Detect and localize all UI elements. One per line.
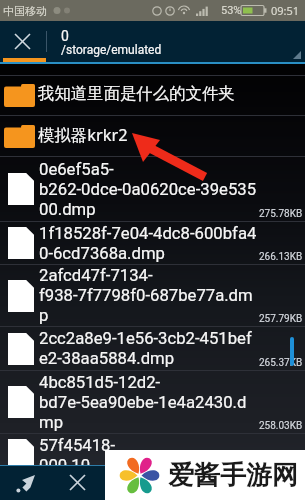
button[interactable]: 2cc2a8e9-1e56-3cb2-451bef e2-38aa5884.dm… <box>0 327 305 370</box>
button[interactable]: Cancel <box>52 465 102 500</box>
button[interactable]: Select <box>0 465 52 500</box>
staticText: 4bc851d5-12d2- bd7e-5ea90ebe-1e4a2430.d … <box>39 373 247 433</box>
staticText: 爱酱手游网 <box>168 459 298 492</box>
staticText: 中国移动 <box>3 4 47 18</box>
button[interactable]: 2afcd47f-7134- f938-7f7798f0-687be77a.dm… <box>0 265 305 326</box>
button[interactable]: 57f45418- 000 10 <box>0 434 305 476</box>
staticText: 275.78KB <box>259 208 303 220</box>
staticText: 258.03KB <box>259 463 303 475</box>
staticText: 257.79KB <box>259 313 303 325</box>
button[interactable]: Close <box>0 21 45 62</box>
button[interactable]: 模拟器krkr2 <box>0 116 305 156</box>
staticText: 265.37KB <box>259 357 303 369</box>
staticText: 266.13KB <box>259 251 303 263</box>
staticText: 0e6ef5a5- b262-0dce-0a0620ce-39e535 00.d… <box>39 160 257 220</box>
staticText: 1f18528f-7e04-4dc8-600bfa4 0-6cd7368a.dm… <box>39 224 257 264</box>
button[interactable]: 我知道里面是什么的文件夹 <box>0 76 305 115</box>
button[interactable]: 0e6ef5a5- b262-0dce-0a0620ce-39e535 00.d… <box>0 157 305 221</box>
staticText: 我知道里面是什么的文件夹 <box>38 83 235 104</box>
staticText: 2afcd47f-7134- f938-7f7798f0-687be77a.dm… <box>39 266 253 326</box>
staticText: 53% <box>221 4 242 17</box>
staticText: 模拟器krkr2 <box>38 123 128 145</box>
staticText: 09:51 <box>271 3 300 18</box>
staticText: 57f45418- 000 10 <box>39 436 116 476</box>
staticText: 258.03KB <box>259 420 303 432</box>
staticText: 0 <box>61 28 69 44</box>
staticText: 2cc2a8e9-1e56-3cb2-451bef e2-38aa5884.dm… <box>39 329 252 369</box>
staticText: /storage/emulated <box>61 43 162 57</box>
button[interactable]: 1f18528f-7e04-4dc8-600bfa4 0-6cd7368a.dm… <box>0 222 305 264</box>
button[interactable]: 4bc851d5-12d2- bd7e-5ea90ebe-1e4a2430.d … <box>0 371 305 433</box>
